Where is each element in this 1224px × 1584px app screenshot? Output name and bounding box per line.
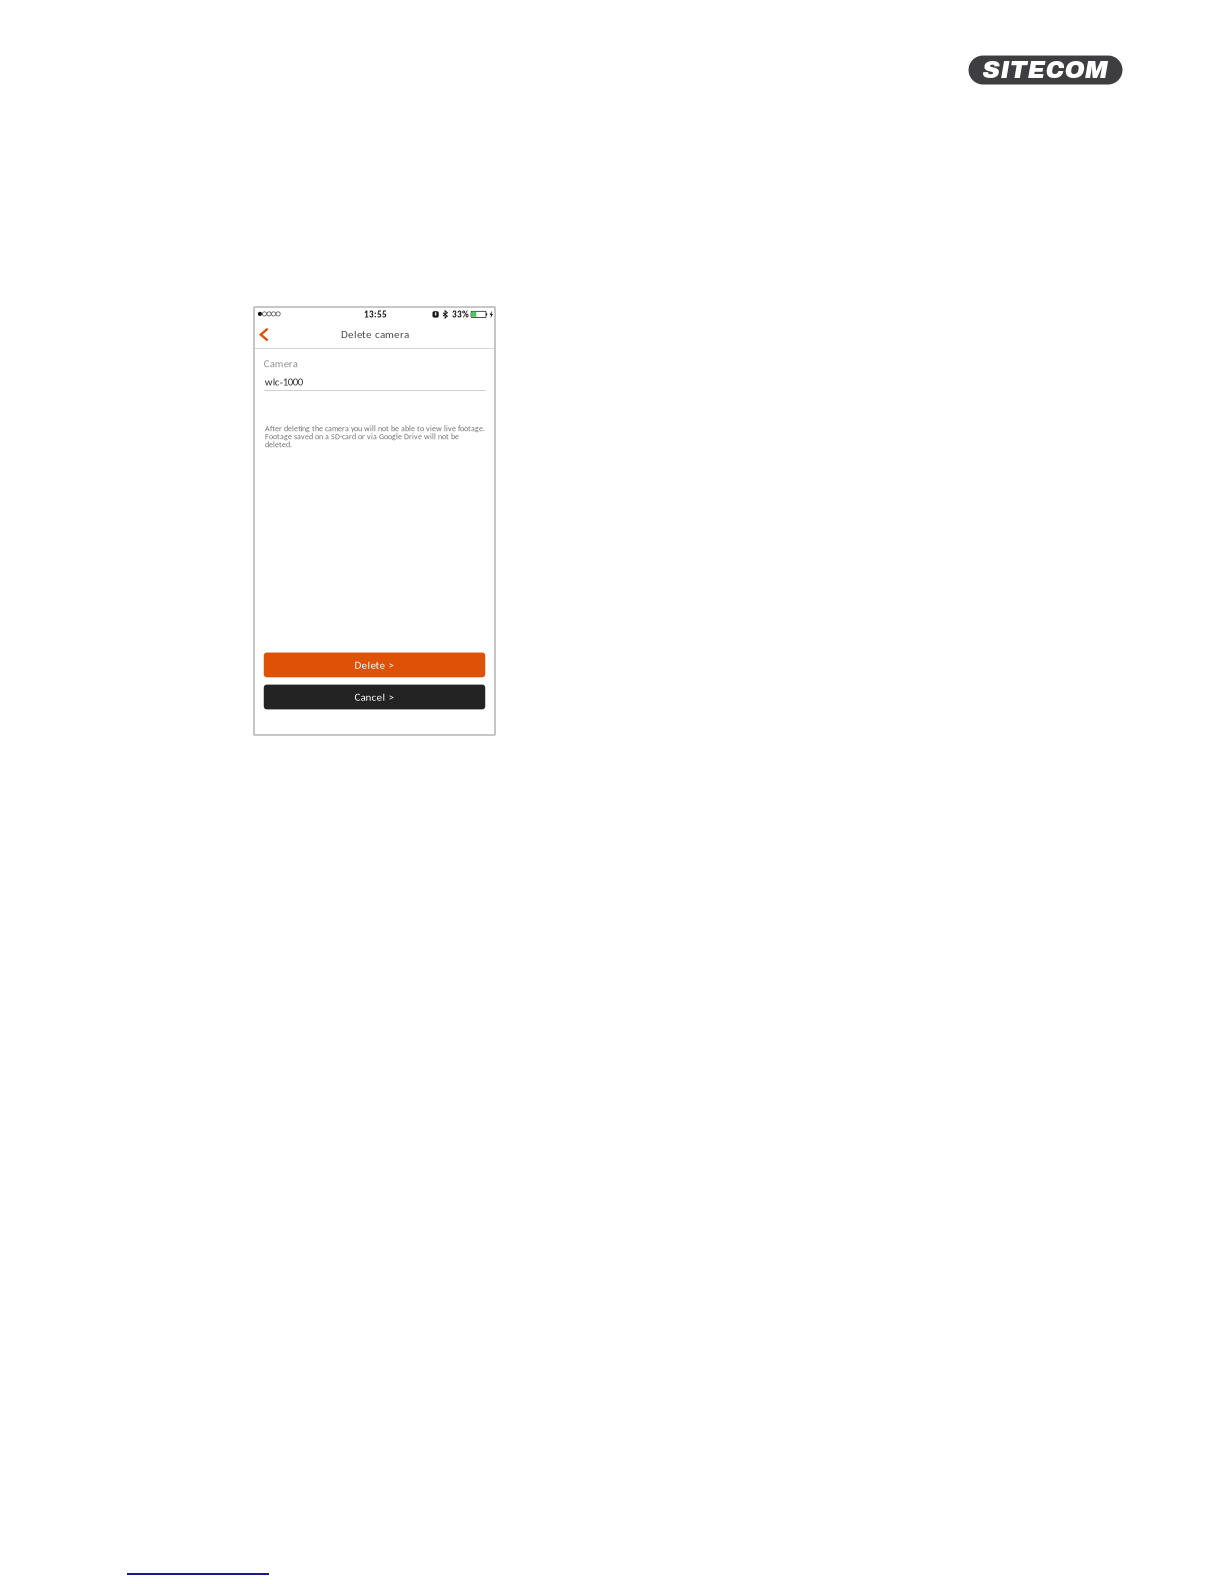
staticText: Cancel > [354, 690, 394, 704]
staticText: wlc-1000 [265, 375, 303, 388]
button[interactable]: Back [251, 322, 277, 348]
staticText: SITECOM [982, 57, 1108, 83]
staticText: After deleting the camera you will not b… [265, 424, 485, 449]
staticText: 13:55 [364, 309, 387, 320]
staticText: Camera [264, 357, 298, 370]
button[interactable]: Cancel > [264, 685, 485, 709]
staticText: 33% [452, 309, 469, 320]
staticText: Delete camera [341, 327, 409, 341]
staticText: Delete > [354, 658, 394, 672]
button[interactable]: Delete > [264, 652, 485, 677]
